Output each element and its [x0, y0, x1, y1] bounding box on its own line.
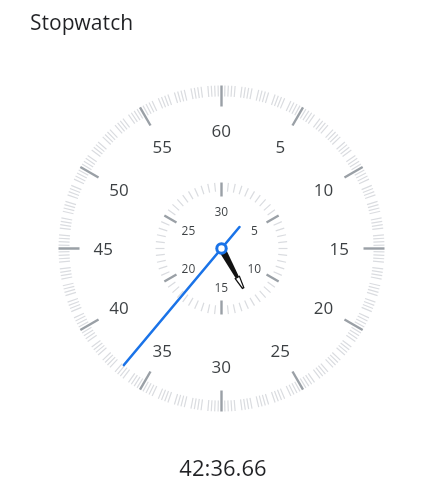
button[interactable]: 42:36.66 [0, 435, 446, 499]
staticText: 42:36.66 [179, 452, 267, 482]
staticText: Stopwatch [30, 8, 134, 37]
button[interactable]: Stopwatch dial [0, 0, 446, 499]
